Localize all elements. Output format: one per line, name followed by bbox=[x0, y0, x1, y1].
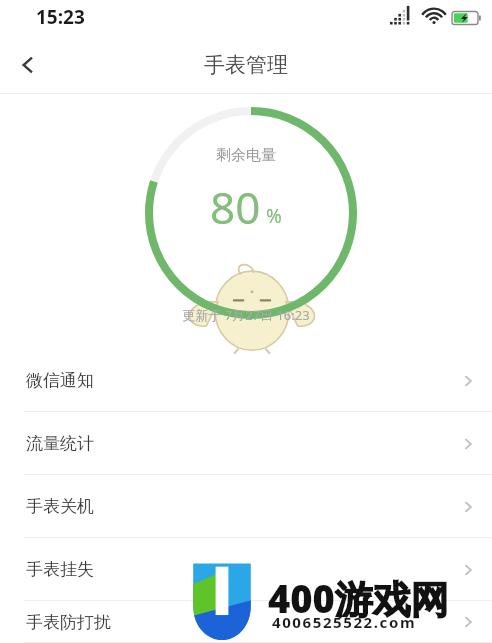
staticText: 80 bbox=[210, 177, 261, 237]
button[interactable]: 微信通知 bbox=[0, 349, 492, 412]
staticText: 流量统计 bbox=[26, 433, 94, 454]
staticText: 15:23 bbox=[36, 4, 85, 30]
staticText: 400游戏网 bbox=[268, 572, 449, 624]
button[interactable]: 手表关机 bbox=[0, 475, 492, 538]
staticText: 手表防打扰 bbox=[26, 612, 111, 633]
button[interactable]: 流量统计 bbox=[0, 412, 492, 475]
staticText: 剩余电量 bbox=[216, 146, 276, 165]
staticText: % bbox=[261, 203, 282, 229]
button[interactable]: 手表挂失 bbox=[0, 538, 492, 601]
staticText: 4006525522.com bbox=[272, 612, 417, 632]
button[interactable]: Back bbox=[0, 37, 56, 93]
staticText: 更新于 7月27日 16:23 bbox=[182, 306, 310, 324]
staticText: 手表关机 bbox=[26, 496, 94, 517]
button[interactable]: 手表防打扰 bbox=[0, 601, 492, 643]
staticText: 手表挂失 bbox=[26, 559, 94, 580]
staticText: 微信通知 bbox=[26, 370, 94, 391]
staticText: 手表管理 bbox=[204, 52, 288, 78]
